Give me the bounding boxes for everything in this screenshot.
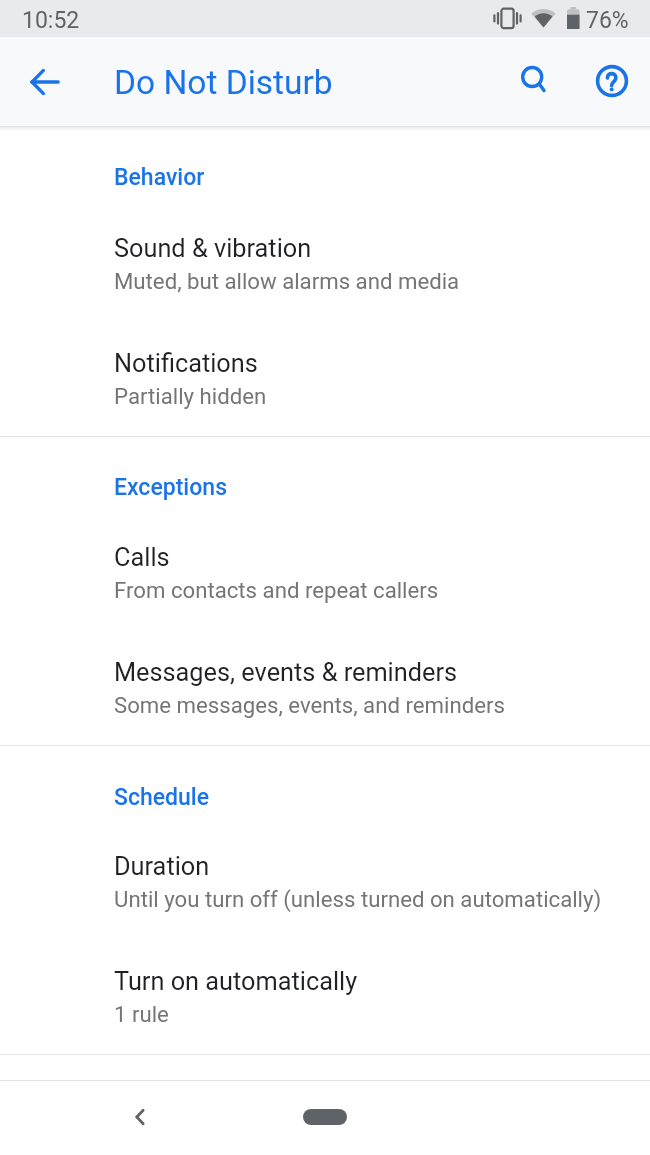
- button[interactable]: Search: [510, 56, 558, 104]
- staticText: From contacts and repeat callers: [114, 577, 439, 603]
- button[interactable]: Turn on automatically: [0, 950, 650, 1039]
- button[interactable]: Notifications: [0, 332, 650, 421]
- staticText: Messages, events & reminders: [114, 658, 458, 688]
- staticText: Calls: [114, 543, 170, 573]
- staticText: Until you turn off (unless turned on aut…: [114, 886, 602, 912]
- staticText: Notifications: [114, 349, 258, 379]
- button[interactable]: Home: [303, 1109, 347, 1125]
- staticText: Partially hidden: [114, 383, 267, 409]
- button[interactable]: Help: [588, 57, 636, 105]
- staticText: 76%: [586, 7, 629, 34]
- staticText: 1 rule: [114, 1001, 169, 1027]
- button[interactable]: Back: [21, 58, 69, 106]
- staticText: Duration: [114, 852, 210, 882]
- staticText: Schedule: [114, 784, 210, 811]
- button[interactable]: Duration: [0, 835, 650, 924]
- staticText: Muted, but allow alarms and media: [114, 268, 460, 294]
- button[interactable]: Sound & vibration: [0, 217, 650, 306]
- button[interactable]: Back: [116, 1093, 164, 1141]
- staticText: Some messages, events, and reminders: [114, 692, 505, 718]
- button[interactable]: Messages, events & reminders: [0, 641, 650, 730]
- staticText: Behavior: [114, 164, 205, 191]
- staticText: Exceptions: [114, 474, 228, 501]
- staticText: Sound & vibration: [114, 234, 312, 264]
- staticText: 10:52: [22, 7, 80, 34]
- button[interactable]: Calls: [0, 526, 650, 615]
- staticText: Turn on automatically: [114, 967, 358, 997]
- staticText: Do Not Disturb: [114, 63, 333, 102]
